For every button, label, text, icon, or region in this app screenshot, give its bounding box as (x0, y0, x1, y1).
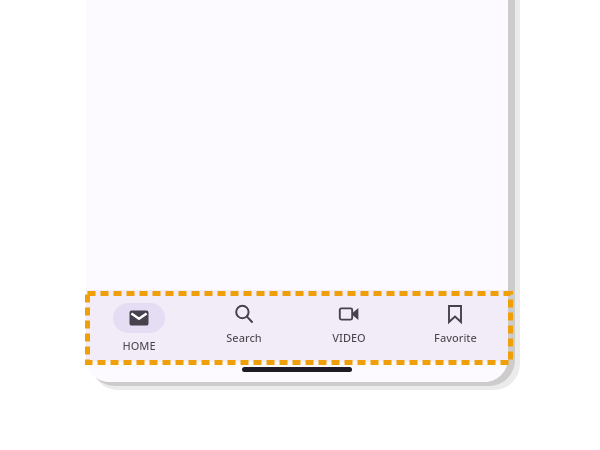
button[interactable]: Video (296, 290, 402, 345)
other: Favorite (445, 304, 465, 324)
staticText: Search (226, 330, 262, 345)
other: Search (234, 304, 254, 324)
button[interactable]: Favorite (402, 290, 508, 345)
staticText: HOME (122, 338, 156, 353)
button[interactable]: Search (191, 290, 296, 345)
staticText: VIDEO (332, 330, 366, 345)
other: Home (129, 308, 149, 328)
staticText: Favorite (434, 330, 477, 345)
other: Video (339, 304, 359, 324)
button[interactable]: Home (86, 290, 191, 353)
